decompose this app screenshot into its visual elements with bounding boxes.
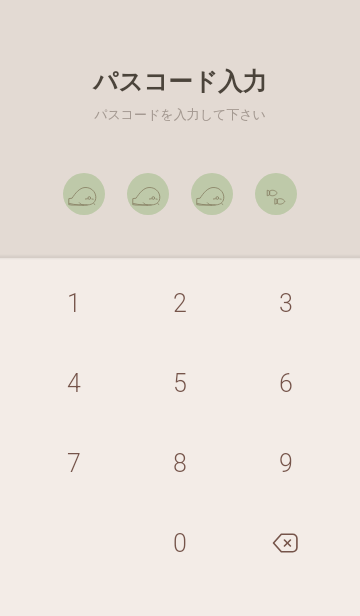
staticText: 4 [67,369,81,398]
staticText: パスコードを入力して下さい [94,106,266,122]
staticText: 6 [279,369,293,398]
button[interactable]: 2 [127,263,233,343]
other: Backspace [273,530,299,556]
button[interactable]: 5 [127,343,233,423]
staticText: 2 [173,289,187,318]
staticText: パスコード入力 [93,66,267,97]
staticText: 8 [173,449,187,478]
button[interactable]: 4 [21,343,127,423]
button[interactable]: 8 [127,423,233,503]
staticText: 1 [67,289,81,318]
staticText: 7 [67,449,81,478]
button[interactable]: 1 [21,263,127,343]
button[interactable]: 3 [233,263,339,343]
button[interactable]: 7 [21,423,127,503]
staticText: 5 [173,369,187,398]
staticText: 9 [279,449,293,478]
button[interactable]: 6 [233,343,339,423]
staticText: 3 [279,289,293,318]
staticText: 0 [173,529,187,558]
button[interactable]: 9 [233,423,339,503]
button[interactable]: Backspace [233,503,339,583]
button[interactable]: 0 [127,503,233,583]
